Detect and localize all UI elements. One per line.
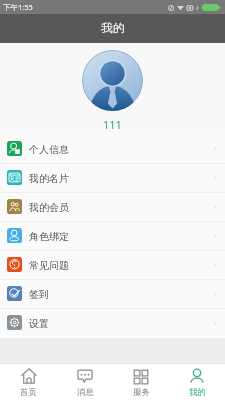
button[interactable]: 首页 [0, 364, 57, 400]
staticText: 个人信息 [29, 143, 69, 156]
button[interactable]: 我的会员 [0, 193, 225, 222]
staticText: 我的 [189, 387, 206, 398]
button[interactable]: 消息 [57, 364, 113, 400]
staticText: 签到 [29, 288, 49, 301]
staticText: 下午1:55 [3, 2, 33, 12]
button[interactable]: 我的 [169, 364, 225, 400]
button[interactable]: 服务 [113, 364, 169, 400]
button[interactable]: 我的名片 [0, 164, 225, 193]
staticText: 消息 [77, 387, 94, 398]
button[interactable]: 签到 [0, 280, 225, 309]
staticText: 服务 [133, 387, 150, 398]
staticText: 我的 [101, 21, 125, 36]
staticText: 我的名片 [29, 172, 69, 185]
button[interactable]: 设置 [0, 309, 225, 338]
staticText: 首页 [20, 387, 37, 398]
button[interactable]: 个人信息 [0, 135, 225, 164]
staticText: 设置 [29, 317, 49, 330]
button[interactable]: 常见问题 [0, 251, 225, 280]
button[interactable]: Profile avatar [82, 50, 143, 111]
staticText: 111 [103, 117, 122, 132]
button[interactable]: 角色绑定 [0, 222, 225, 251]
staticText: 常见问题 [29, 259, 69, 272]
staticText: 我的会员 [29, 201, 69, 214]
staticText: 角色绑定 [29, 230, 69, 243]
